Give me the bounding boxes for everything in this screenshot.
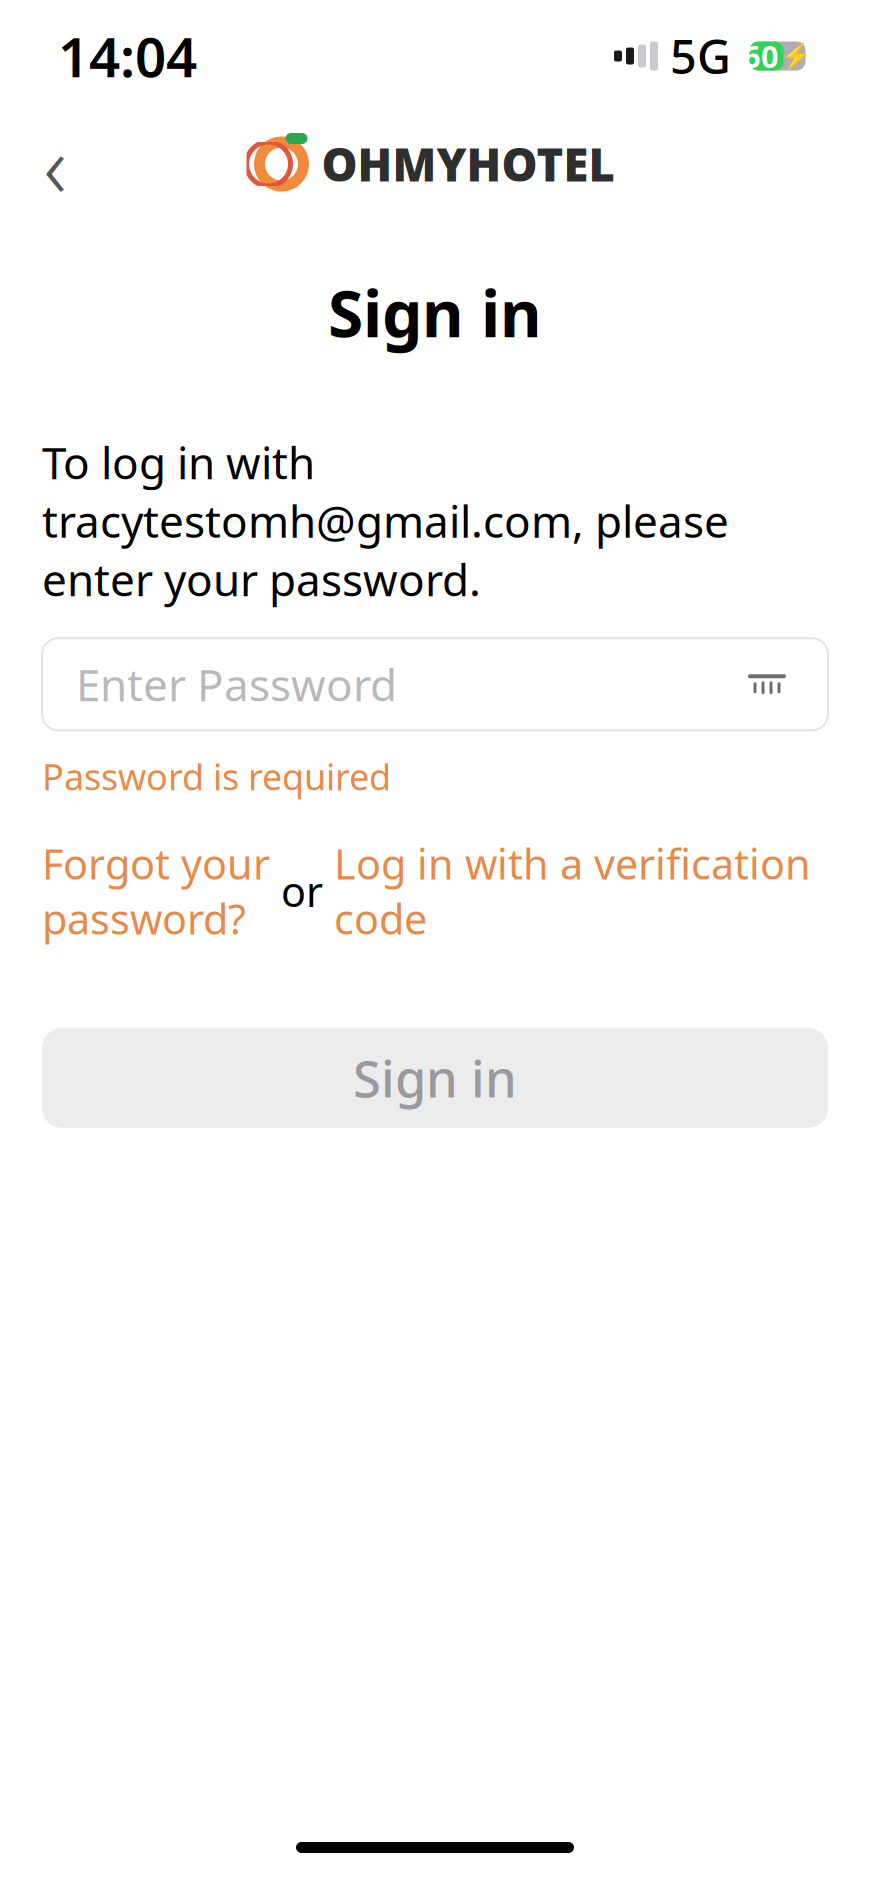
staticText: 14:04 — [58, 20, 197, 92]
staticText: Enter Password — [76, 655, 397, 713]
staticText: Log in with a verification code — [334, 836, 811, 946]
button[interactable]: Forgot your password? — [42, 836, 270, 946]
staticText: To log in with tracytestomh@gmail.com, p… — [42, 433, 729, 608]
button[interactable]: Back — [18, 127, 92, 201]
staticText: OHMYHOTEL — [321, 134, 614, 194]
staticText: Password is required — [42, 752, 391, 800]
button[interactable]: Log in with a verification code — [334, 836, 811, 946]
button[interactable]: Sign in — [42, 1028, 828, 1128]
staticText: Sign in — [328, 270, 542, 355]
staticText: Forgot your password? — [42, 836, 270, 946]
staticText: ⚡ — [780, 41, 812, 70]
staticText: 5G — [670, 25, 731, 87]
staticText: Sign in — [353, 1044, 517, 1111]
staticText: ‹ — [43, 106, 66, 222]
staticText: 60 — [743, 36, 779, 76]
button[interactable]: Enter Password — [42, 638, 828, 730]
staticText: or — [270, 863, 334, 918]
